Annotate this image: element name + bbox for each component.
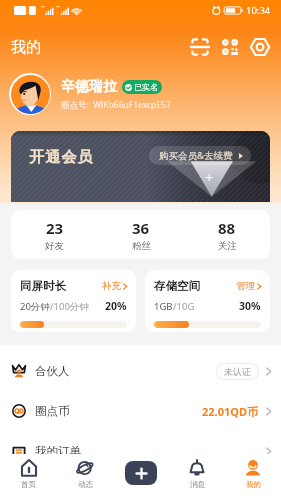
staticText: 购买会员&去续费 (159, 149, 233, 162)
staticText: 开通会员 (29, 148, 94, 167)
staticText: /100分钟 (50, 300, 89, 313)
staticText: 20分钟 (20, 300, 50, 313)
staticText: 动态 (78, 480, 93, 489)
staticText: 我的 (11, 38, 41, 57)
staticText: 88 (218, 218, 236, 238)
button[interactable]: 首页 (0, 454, 57, 500)
staticText: 未认证 (224, 366, 251, 377)
button[interactable]: 23 (11, 210, 98, 259)
button[interactable]: Scan (185, 32, 215, 62)
staticText: 23 (46, 218, 64, 238)
staticText: 粉丝 (132, 240, 151, 252)
button[interactable]: Add (125, 461, 157, 485)
staticText: 同屏时长 (20, 279, 66, 293)
button[interactable]: 购买会员&去续费 (149, 146, 251, 165)
button[interactable]: 圈点币 (0, 391, 281, 431)
button[interactable]: 消息 (169, 454, 225, 500)
staticText: 关注 (218, 240, 237, 252)
staticText: 圈点号: WlKb66uF1excpE57 (61, 99, 171, 111)
button[interactable]: 存储空间 (145, 270, 270, 332)
staticText: 已实名 (134, 82, 158, 92)
button[interactable]: 88 (184, 210, 270, 259)
staticText: 20% (105, 299, 127, 313)
button[interactable]: 我的订单 (0, 431, 281, 471)
staticText: 管理 (236, 280, 255, 292)
staticText: 我的 (246, 480, 261, 489)
button[interactable]: Settings (245, 32, 275, 62)
staticText: 辛德瑞拉 (61, 78, 117, 96)
staticText: 消息 (190, 480, 205, 489)
staticText: 22.01QD币 (202, 404, 259, 419)
button[interactable]: QR code (215, 32, 245, 62)
staticText: 合伙人 (35, 364, 70, 378)
staticText: 首页 (21, 480, 36, 489)
staticText: 30% (239, 299, 261, 313)
staticText: 圈点币 (35, 404, 70, 418)
staticText: 存储空间 (154, 279, 200, 293)
staticText: 好友 (45, 240, 64, 252)
button[interactable]: 36 (98, 210, 184, 259)
staticText: 补充 (102, 280, 121, 292)
button[interactable]: 开通会员 (11, 131, 270, 202)
button[interactable]: 动态 (57, 454, 113, 500)
staticText: /10G (173, 300, 195, 313)
button[interactable]: 合伙人 (0, 351, 281, 391)
staticText: 我的订单 (35, 444, 81, 458)
staticText: 1GB (154, 300, 173, 313)
button[interactable]: 我的 (225, 454, 281, 500)
staticText: 10:34 (246, 4, 271, 17)
button[interactable]: 同屏时长 (11, 270, 136, 332)
staticText: 36 (132, 218, 150, 238)
